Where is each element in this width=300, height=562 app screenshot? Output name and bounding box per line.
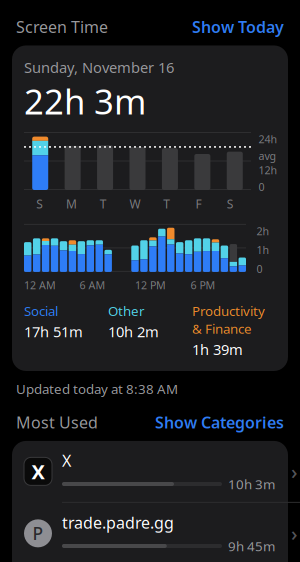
staticText: 6 PM (190, 278, 215, 292)
button[interactable]: Show Today (192, 16, 284, 37)
staticText: › (291, 520, 298, 547)
staticText: T (100, 196, 107, 212)
staticText: Most Used (16, 412, 98, 433)
staticText: F (195, 196, 201, 212)
button[interactable]: Show Categories (155, 412, 284, 433)
staticText: Updated today at 8:38 AM (16, 380, 178, 398)
staticText: Social (24, 302, 58, 320)
staticText: 17h 51m (24, 322, 83, 341)
staticText: 0 (256, 262, 262, 276)
staticText: 0 (258, 180, 264, 194)
staticText: avg (258, 149, 276, 163)
staticText: 12h (258, 163, 277, 177)
staticText: Screen Time (16, 16, 108, 37)
staticText: 1h (256, 243, 269, 257)
staticText: 10h 3m (228, 475, 275, 493)
staticText: 10h 2m (108, 322, 159, 341)
staticText: Show Categories (155, 412, 284, 433)
staticText: M (66, 196, 77, 212)
button[interactable]: P (12, 503, 300, 562)
staticText: 24h (258, 132, 277, 146)
staticText: 1h 39m (192, 339, 243, 359)
staticText: 9h 45m (228, 537, 275, 555)
staticText: 12 PM (135, 278, 166, 292)
staticText: X (62, 450, 71, 471)
staticText: Sunday, November 16 (24, 57, 174, 77)
staticText: › (291, 458, 298, 485)
staticText: 12 AM (24, 278, 56, 292)
staticText: 2h (256, 224, 269, 238)
staticText: Productivity & Finance (192, 302, 265, 337)
staticText: W (129, 196, 140, 212)
staticText: Other (108, 302, 145, 320)
staticText: 22h 3m (24, 78, 146, 124)
staticText: 6 AM (79, 278, 105, 292)
staticText: S (227, 196, 234, 212)
staticText: trade.padre.gg (62, 512, 174, 533)
staticText: Show Today (192, 16, 284, 37)
staticText: T (163, 196, 170, 212)
button[interactable]: X (12, 441, 300, 503)
staticText: P (32, 522, 43, 545)
staticText: X (31, 458, 44, 485)
staticText: S (36, 196, 43, 212)
